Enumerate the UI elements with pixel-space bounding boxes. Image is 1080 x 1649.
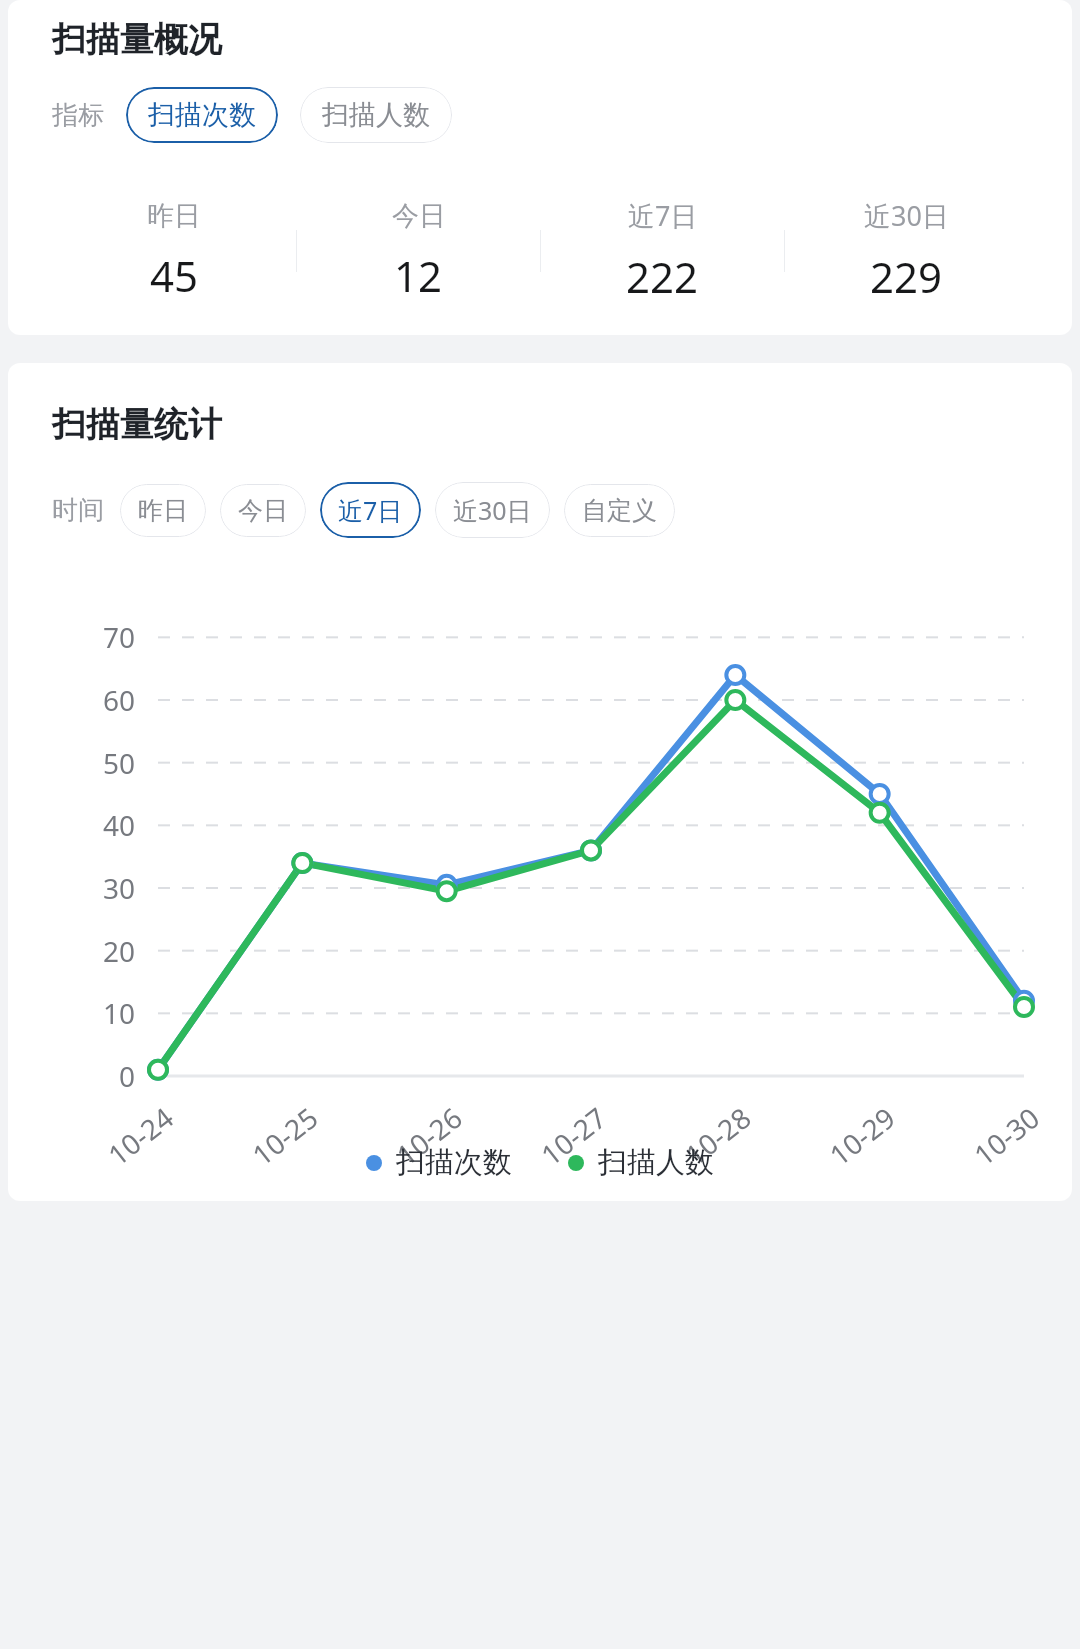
button[interactable]: 扫描人数: [300, 87, 452, 143]
staticText: 近7日: [628, 197, 698, 234]
staticText: 时间: [52, 494, 104, 527]
staticText: 扫描次数: [148, 98, 256, 132]
staticText: 222: [626, 248, 699, 305]
staticText: 45: [150, 247, 199, 304]
staticText: 扫描次数: [396, 1144, 512, 1181]
button[interactable]: 自定义: [564, 484, 675, 537]
button[interactable]: 今日: [220, 484, 306, 537]
staticText: 229: [870, 248, 943, 305]
staticText: 昨日: [147, 199, 201, 233]
button[interactable]: 扫描次数: [126, 87, 278, 143]
staticText: 今日: [392, 199, 446, 233]
staticText: 12: [394, 247, 443, 304]
staticText: 扫描人数: [322, 98, 430, 132]
staticText: 昨日: [138, 495, 188, 526]
button[interactable]: 昨日: [120, 484, 206, 537]
staticText: 近30日: [453, 493, 532, 527]
staticText: 扫描量统计: [52, 403, 222, 446]
staticText: 指标: [52, 99, 104, 132]
button[interactable]: 近30日: [435, 482, 550, 538]
staticText: 今日: [238, 495, 288, 526]
staticText: 近7日: [338, 493, 403, 527]
staticText: 扫描人数: [598, 1144, 714, 1181]
staticText: 自定义: [582, 495, 657, 526]
button[interactable]: 近7日: [320, 482, 421, 538]
staticText: 扫描量概况: [52, 18, 222, 61]
staticText: 近30日: [864, 197, 949, 234]
